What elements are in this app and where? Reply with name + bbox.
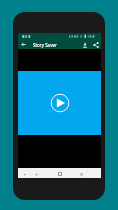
button[interactable]: Share <box>90 40 101 49</box>
button[interactable]: Back <box>19 169 30 179</box>
button[interactable]: Home <box>54 169 65 179</box>
button[interactable]: Recents <box>76 169 87 179</box>
button[interactable]: Download <box>79 40 90 49</box>
button[interactable]: Play <box>50 93 70 113</box>
staticText: Story Saver <box>33 42 57 48</box>
button[interactable]: Back <box>18 40 28 49</box>
button[interactable]: Menu <box>31 169 42 179</box>
